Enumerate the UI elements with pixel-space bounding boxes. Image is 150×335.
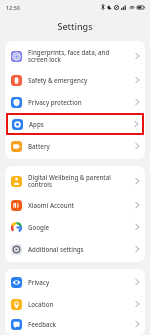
button[interactable]: Feedback: [5, 315, 145, 333]
other: Open: [135, 201, 140, 209]
button[interactable]: Apps: [6, 113, 144, 135]
staticText: Battery: [28, 142, 132, 150]
staticText: Settings: [57, 20, 93, 32]
other: Open: [135, 52, 140, 60]
staticText: Privacy protection: [28, 98, 132, 106]
staticText: Digital Wellbeing & parental controls: [28, 173, 132, 189]
button[interactable]: Location: [5, 293, 145, 315]
staticText: Fingerprints, face data, and screen lock: [28, 48, 132, 64]
staticText: Location: [28, 300, 132, 308]
other: Open: [135, 278, 140, 286]
button[interactable]: Additional settings: [5, 238, 145, 260]
other: Open: [135, 98, 140, 106]
staticText: Xiaomi Account: [28, 201, 132, 209]
staticText: Google: [28, 223, 132, 231]
other: Open: [135, 142, 140, 150]
button[interactable]: Google: [5, 216, 145, 238]
button[interactable]: Privacy protection: [5, 91, 145, 113]
button[interactable]: Fingerprints, face data, and screen lock: [5, 43, 145, 69]
other: Open: [134, 120, 139, 128]
button[interactable]: Battery: [5, 135, 145, 157]
other: Open: [135, 320, 140, 328]
staticText: Privacy: [28, 278, 132, 286]
staticText: Feedback: [28, 320, 132, 328]
other: Open: [135, 223, 140, 231]
other: Open: [135, 300, 140, 308]
other: Open: [135, 76, 140, 84]
staticText: 12:50: [6, 4, 20, 11]
other: Open: [135, 245, 140, 253]
button[interactable]: Privacy: [5, 271, 145, 293]
button[interactable]: Xiaomi Account: [5, 194, 145, 216]
staticText: Additional settings: [28, 245, 132, 253]
button[interactable]: Safety & emergency: [5, 69, 145, 91]
other: Open: [135, 177, 140, 185]
staticText: Safety & emergency: [28, 76, 132, 84]
staticText: Apps: [29, 120, 131, 128]
button[interactable]: Digital Wellbeing & parental controls: [5, 168, 145, 194]
